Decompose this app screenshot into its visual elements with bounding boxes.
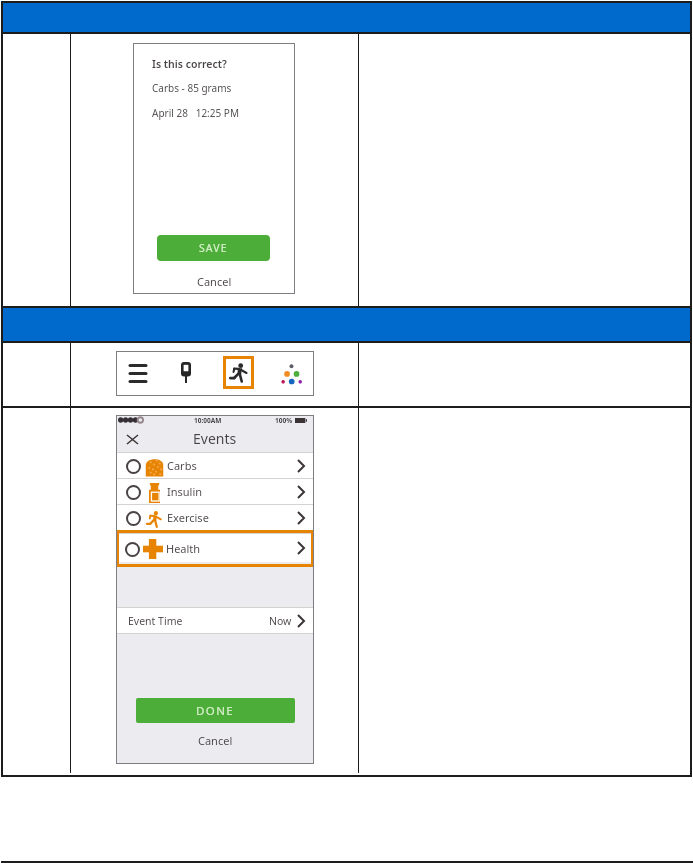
button[interactable]: Carbs (116, 453, 314, 478)
staticText: 10:00AM (194, 416, 222, 425)
staticText: Carbs - 85 grams (152, 81, 232, 95)
staticText: Carbs (167, 458, 197, 473)
button[interactable]: Glucose meter (174, 358, 198, 386)
staticText: 100% (275, 416, 293, 425)
staticText: Event Time (128, 614, 183, 628)
staticText: Exercise (167, 510, 209, 525)
staticText: DONE (196, 703, 235, 719)
button[interactable]: Health (116, 534, 314, 562)
staticText: April 28 12:25 PM (152, 106, 239, 120)
button[interactable]: Cancel (133, 272, 295, 290)
button[interactable]: Insulin (116, 479, 314, 504)
staticText: Is this correct? (152, 57, 227, 71)
staticText: Now (269, 614, 292, 628)
staticText: Events (193, 429, 237, 448)
staticText: Health (166, 541, 201, 556)
button[interactable]: Cancel (116, 731, 314, 749)
button[interactable]: Exercise (223, 356, 254, 389)
button[interactable]: SAVE (157, 235, 270, 261)
staticText: Cancel (197, 274, 232, 289)
staticText: Cancel (198, 733, 233, 748)
button[interactable]: Event Time (116, 608, 314, 633)
button[interactable]: More options (277, 358, 305, 388)
button[interactable]: Menu (124, 359, 152, 387)
button[interactable]: Exercise (116, 505, 314, 530)
button[interactable]: DONE (136, 698, 295, 723)
staticText: SAVE (199, 241, 228, 255)
staticText: Insulin (167, 484, 203, 499)
button[interactable]: Close (124, 431, 140, 447)
